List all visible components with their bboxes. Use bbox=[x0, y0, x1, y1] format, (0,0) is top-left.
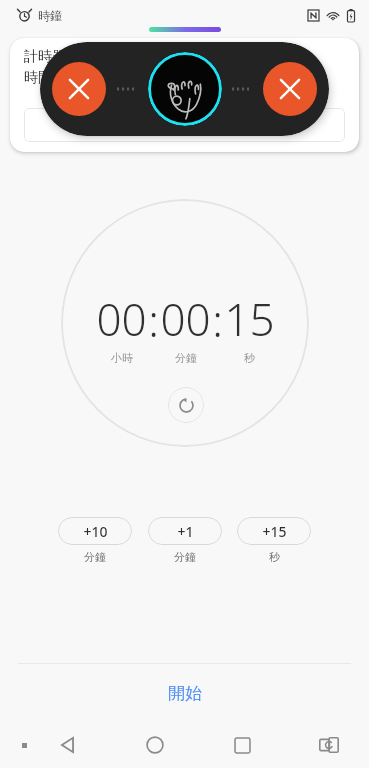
button[interactable]: Recent apps bbox=[222, 725, 262, 765]
button[interactable]: Home bbox=[135, 725, 175, 765]
staticText: 15 bbox=[224, 289, 275, 349]
staticText: 分鐘 bbox=[84, 550, 106, 564]
staticText: 小時 bbox=[111, 351, 133, 365]
staticText: 00 bbox=[96, 289, 147, 349]
staticText: 時間到 bbox=[24, 69, 66, 87]
button[interactable]: Dismiss bbox=[263, 62, 317, 116]
button[interactable]: Gesture control bbox=[148, 52, 222, 126]
staticText: 秒 bbox=[269, 550, 280, 564]
staticText: 計時器 bbox=[24, 48, 66, 66]
button[interactable]: 計時器 bbox=[10, 38, 359, 152]
staticText: +10 bbox=[83, 522, 108, 541]
button[interactable]: +1 bbox=[148, 517, 222, 545]
staticText: : bbox=[212, 290, 223, 350]
button[interactable]: Dismiss bbox=[52, 62, 106, 116]
button[interactable]: +15 bbox=[237, 517, 311, 545]
staticText: +15 bbox=[262, 522, 287, 541]
button[interactable]: Reset bbox=[168, 387, 204, 423]
staticText: 秒 bbox=[244, 351, 255, 365]
staticText: : bbox=[148, 290, 159, 350]
button[interactable]: Rotate screen bbox=[309, 725, 349, 765]
staticText: 分鐘 bbox=[175, 351, 197, 365]
button[interactable]: Back bbox=[48, 725, 88, 765]
staticText: +1 bbox=[177, 522, 194, 541]
button[interactable]: 開始 bbox=[0, 664, 369, 722]
staticText: 00 bbox=[160, 289, 211, 349]
button[interactable] bbox=[24, 108, 345, 142]
staticText: 開始 bbox=[168, 683, 202, 704]
staticText: 分鐘 bbox=[174, 550, 196, 564]
staticText: 時鐘 bbox=[38, 8, 62, 23]
button[interactable]: +10 bbox=[58, 517, 132, 545]
